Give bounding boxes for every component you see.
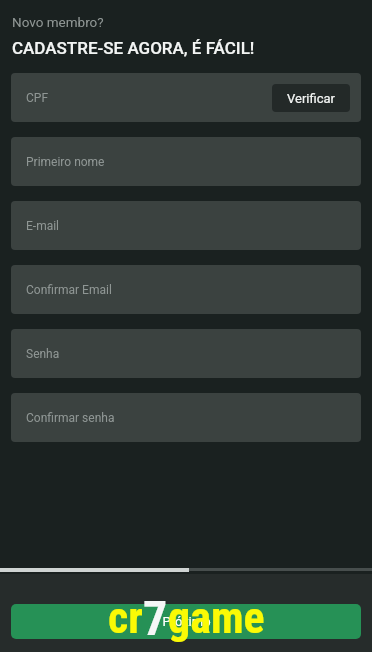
button[interactable]: Senha: [11, 329, 361, 378]
button[interactable]: Primeiro nome: [11, 137, 361, 186]
staticText: Senha: [26, 347, 60, 361]
button[interactable]: Próximo: [11, 604, 361, 639]
button[interactable]: Verificar: [272, 84, 350, 112]
button[interactable]: E-mail: [11, 201, 361, 250]
staticText: CADASTRE-SE AGORA, É FÁCIL!: [12, 38, 255, 58]
staticText: Confirmar senha: [26, 411, 115, 425]
staticText: E-mail: [26, 219, 60, 233]
staticText: Novo membro?: [12, 14, 104, 30]
staticText: cr: [108, 592, 143, 644]
staticText: Próximo: [162, 614, 211, 629]
staticText: 7: [143, 590, 168, 646]
button[interactable]: CPF: [11, 73, 361, 122]
staticText: CPF: [26, 91, 49, 105]
button[interactable]: Confirmar Email: [11, 265, 361, 314]
button[interactable]: Confirmar senha: [11, 393, 361, 442]
staticText: Verificar: [287, 91, 335, 106]
staticText: Primeiro nome: [26, 155, 105, 169]
staticText: game: [168, 592, 265, 644]
staticText: Confirmar Email: [26, 283, 112, 297]
